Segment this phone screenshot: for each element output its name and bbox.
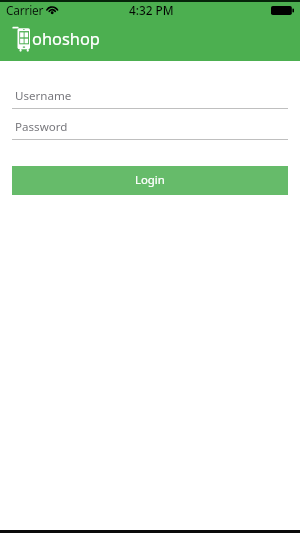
other: Battery full: [271, 6, 294, 15]
staticText: Login: [135, 172, 165, 188]
staticText: Password: [15, 119, 68, 135]
button[interactable]: Password: [12, 113, 288, 140]
other: Wi-Fi signal: [46, 3, 59, 14]
staticText: Carrier: [6, 2, 44, 18]
staticText: ohoshop: [32, 27, 100, 49]
button[interactable]: Username: [12, 82, 288, 109]
staticText: Username: [15, 88, 72, 104]
button[interactable]: ohoshop logo: [10, 24, 102, 56]
other: ohoshop logo: [12, 26, 32, 52]
staticText: 4:32 PM: [129, 2, 174, 18]
button[interactable]: Login: [12, 166, 288, 195]
